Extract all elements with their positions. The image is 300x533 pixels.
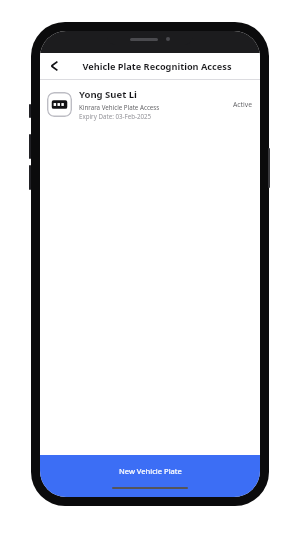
staticText: Vehicle Plate Recognition Access xyxy=(82,60,232,73)
staticText: Yong Suet Li xyxy=(79,88,137,101)
staticText: Active xyxy=(233,100,253,109)
staticText: New Vehicle Plate xyxy=(119,466,182,476)
button[interactable]: Back xyxy=(44,56,64,76)
button[interactable]: Yong Suet Li xyxy=(40,80,260,128)
staticText: Kinrara Vehicle Plate Access xyxy=(79,103,160,111)
button[interactable]: New Vehicle Plate xyxy=(40,455,260,497)
staticText: Expiry Date: 03-Feb-2025 xyxy=(79,112,152,120)
